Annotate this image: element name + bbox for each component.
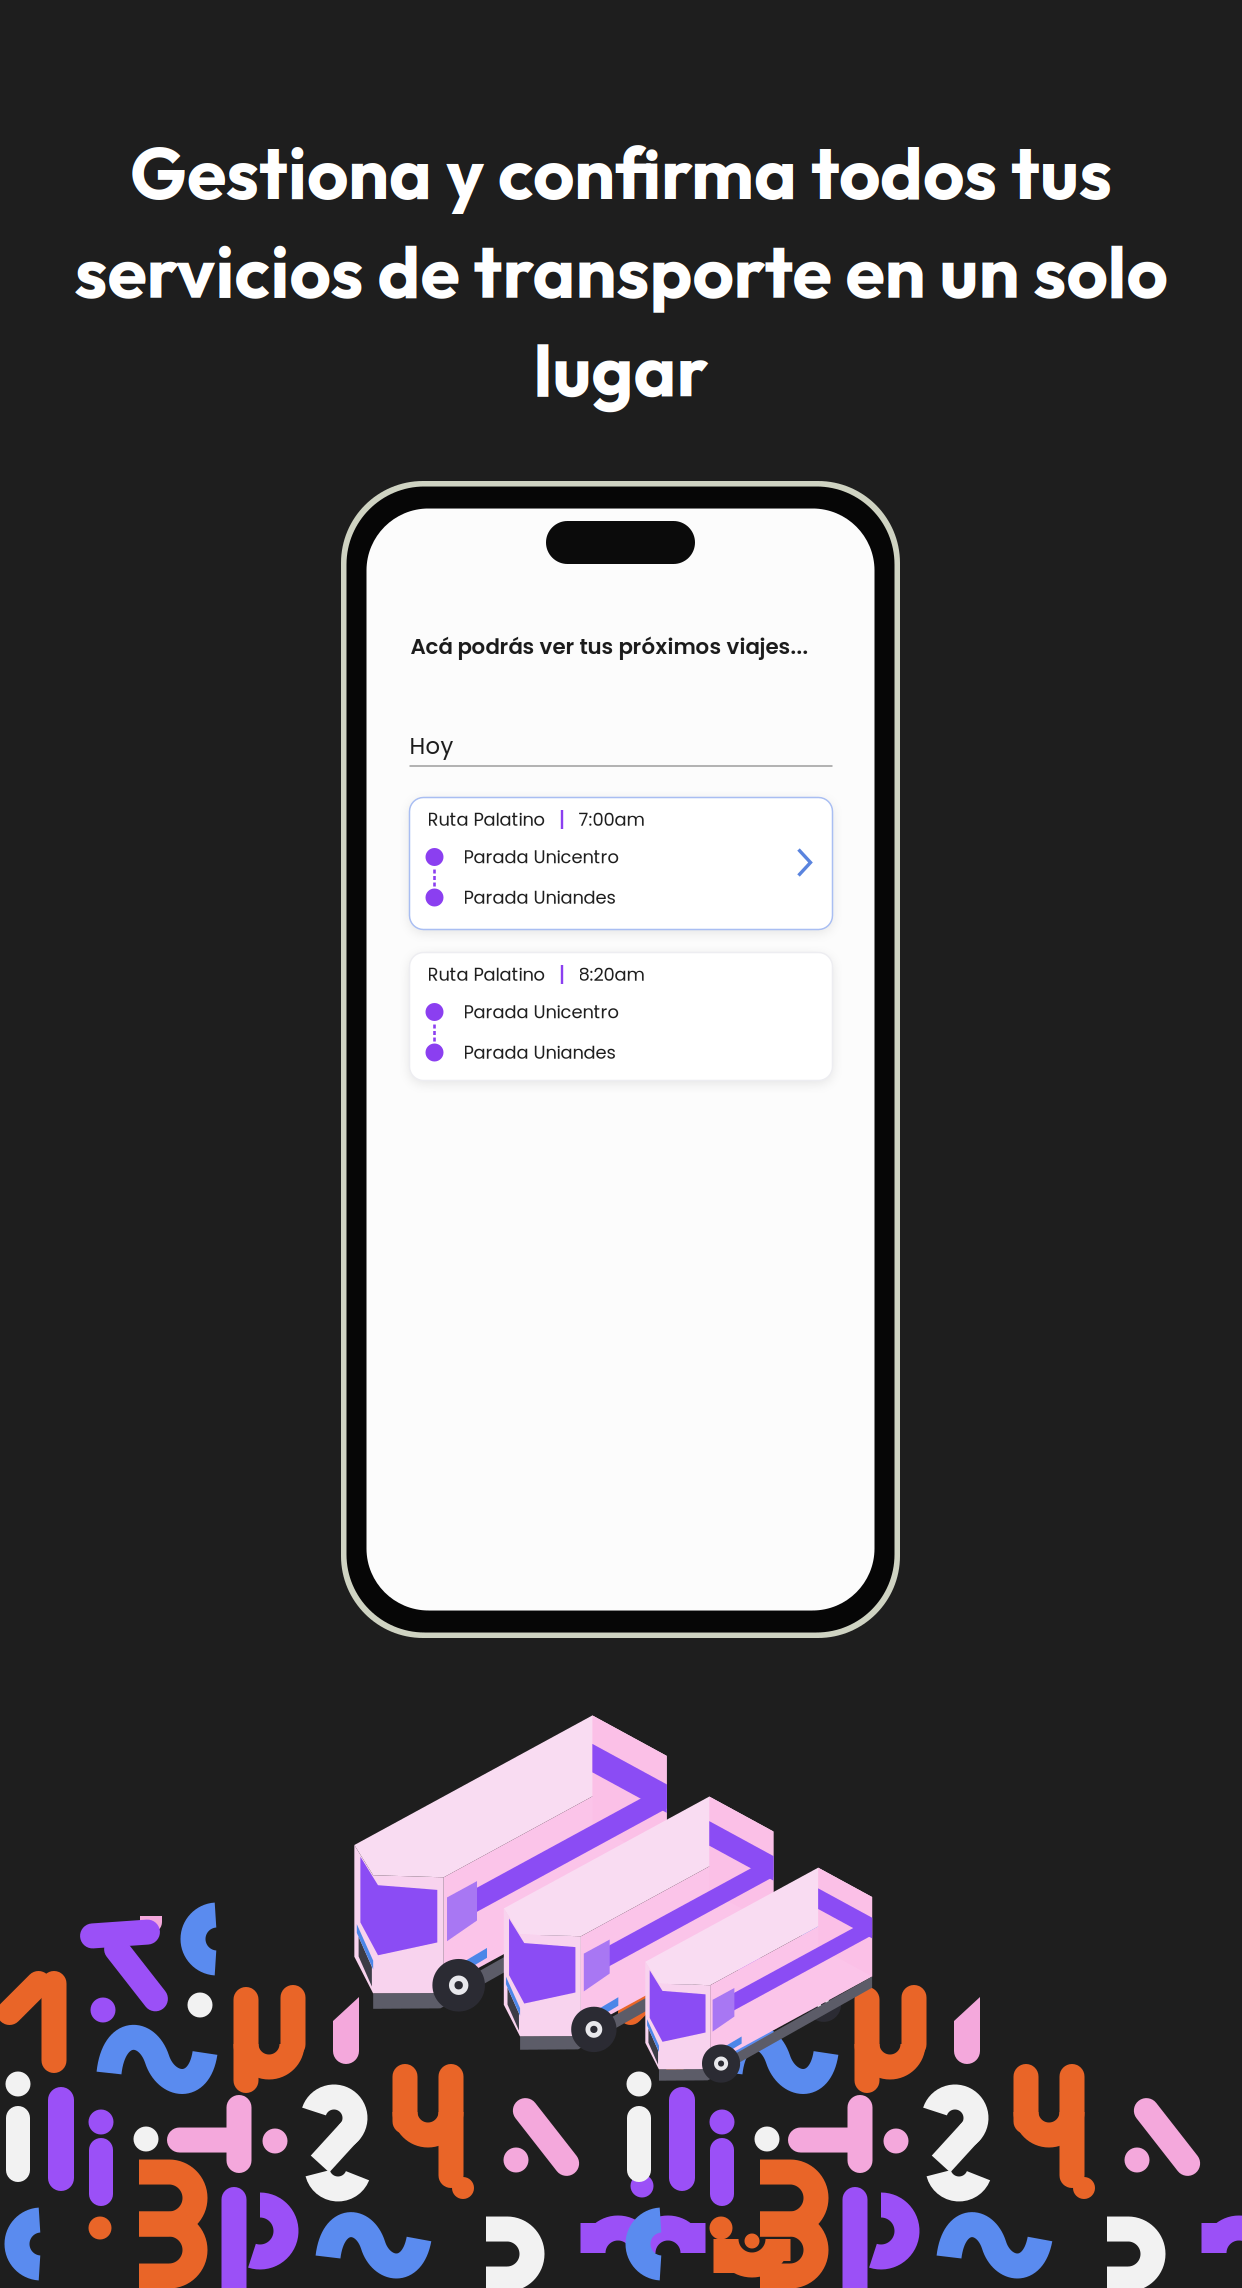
staticText: servicios de transporte en un solo [74,226,1167,316]
staticText: Parada Uniandes [463,1040,615,1065]
button[interactable]: Ruta Palatino [409,797,832,929]
staticText: Acá podrás ver tus próximos viajes... [410,632,808,661]
staticText: 7:00am [578,807,644,832]
staticText: Parada Unicentro [463,844,618,869]
button[interactable]: Ruta Palatino [409,952,832,1080]
staticText: Parada Unicentro [463,999,618,1024]
staticText: Ruta Palatino [427,807,544,832]
staticText: Ruta Palatino [427,962,544,987]
staticText: Parada Uniandes [463,885,615,910]
staticText: lugar [533,324,708,415]
staticText: Hoy [409,730,453,762]
staticText: Gestiona y confirma todos tus [130,127,1112,218]
staticText: 8:20am [578,962,644,987]
